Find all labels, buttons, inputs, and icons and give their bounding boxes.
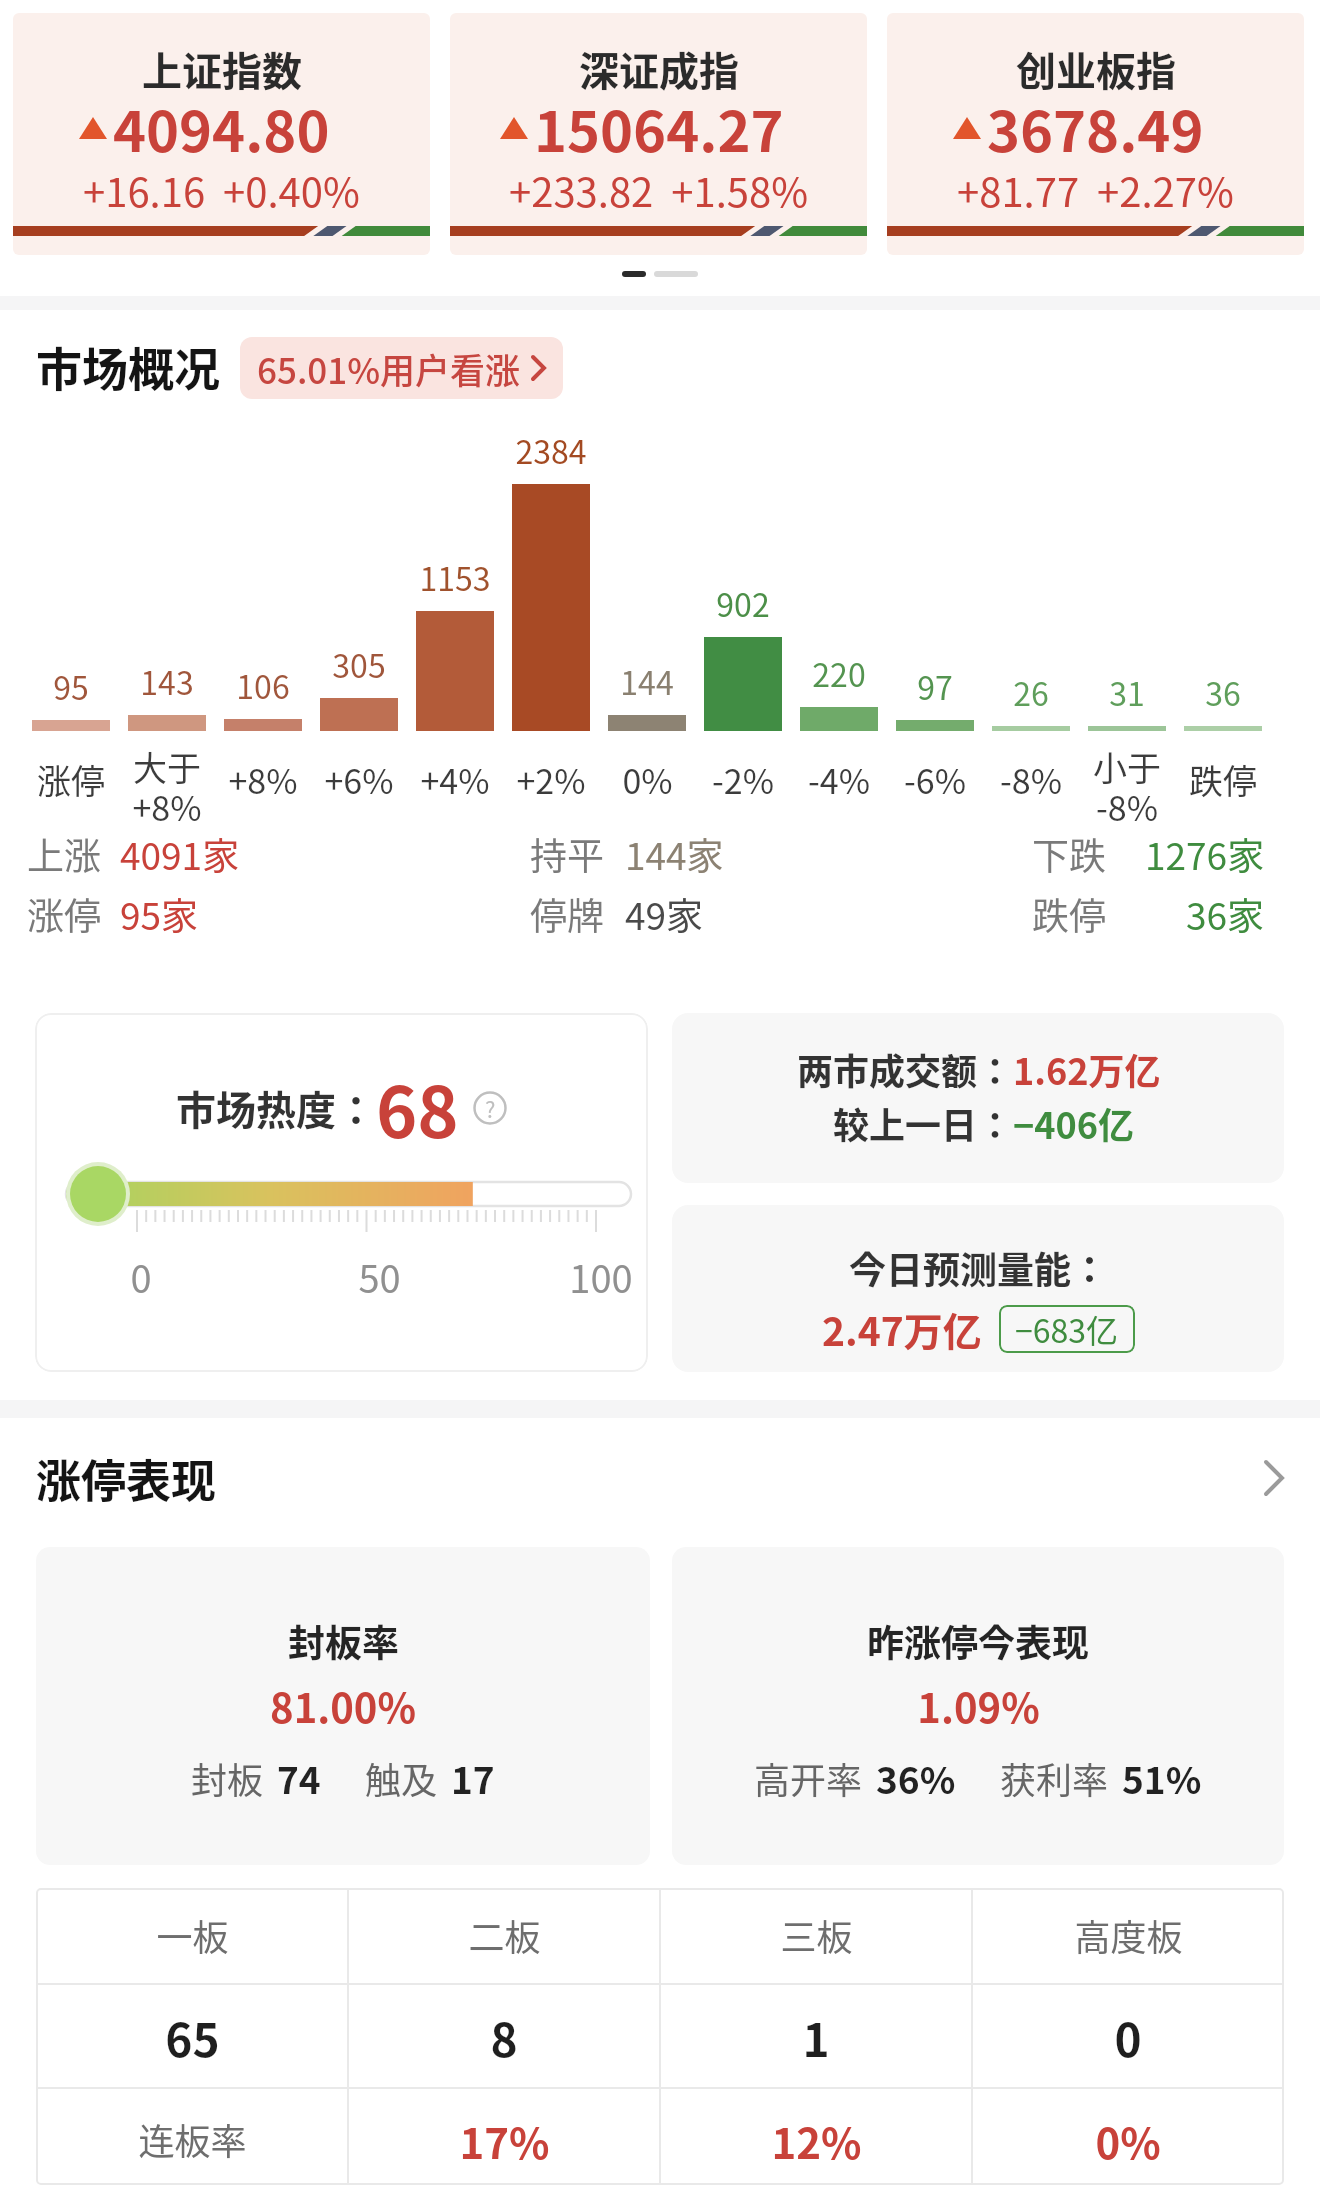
staticText: 深证成指 xyxy=(579,40,739,98)
staticText: 市场热度： xyxy=(176,1079,376,1137)
staticText: -2% xyxy=(712,755,774,804)
staticText: 49家 xyxy=(625,887,704,941)
staticText: 51% xyxy=(1122,1751,1202,1805)
staticText: 144 xyxy=(620,658,674,704)
staticText: 50 xyxy=(358,1249,401,1304)
staticText: 0 xyxy=(1114,2004,1142,2071)
staticText: +8% xyxy=(228,755,298,804)
button[interactable]: 昨涨停今表现 xyxy=(672,1547,1284,1865)
staticText: 封板 xyxy=(191,1752,264,1804)
staticText: 两市成交额： xyxy=(797,1043,1014,1095)
staticText: 封板率 xyxy=(288,1614,399,1668)
staticText: 跌停 xyxy=(1032,887,1106,941)
staticText: 1153 xyxy=(419,554,491,600)
staticText: 26 xyxy=(1013,669,1049,715)
staticText: 17 xyxy=(451,1751,495,1805)
staticText: 0 xyxy=(130,1249,152,1304)
staticText: 小于 -8% xyxy=(1093,742,1161,831)
staticText: 95家 xyxy=(120,887,199,941)
staticText: 106 xyxy=(236,662,290,708)
staticText: 81.00% xyxy=(270,1677,416,1735)
staticText: 15064.27 xyxy=(534,87,784,168)
staticText: +233.82 +1.58% xyxy=(509,161,808,219)
button[interactable]: 今日预测量能： xyxy=(672,1205,1284,1372)
staticText: −406亿 xyxy=(1013,1097,1134,1149)
staticText: 3678.49 xyxy=(987,87,1204,168)
staticText: 跌停 xyxy=(1189,755,1257,804)
staticText: ? xyxy=(485,1092,496,1124)
staticText: -4% xyxy=(808,755,870,804)
staticText: 高开率 xyxy=(754,1752,863,1804)
staticText: -6% xyxy=(904,755,966,804)
staticText: 1 xyxy=(802,2004,830,2071)
staticText: −683亿 xyxy=(1015,1306,1119,1352)
staticText: +81.77 +2.27% xyxy=(957,161,1234,219)
staticText: 停牌 xyxy=(530,887,604,941)
staticText: 涨停 xyxy=(37,755,105,804)
staticText: 一板 xyxy=(156,1909,229,1961)
staticText: 1.62万亿 xyxy=(1013,1043,1161,1095)
staticText: 4091家 xyxy=(120,827,240,881)
staticText: 三板 xyxy=(780,1909,853,1961)
staticText: +6% xyxy=(324,755,394,804)
button[interactable] xyxy=(36,1888,1284,2185)
button[interactable]: 深证成指 xyxy=(450,13,867,255)
staticText: 31 xyxy=(1109,669,1145,715)
staticText: 8 xyxy=(490,2004,518,2071)
staticText: 65.01%用户看涨 xyxy=(257,343,521,394)
staticText: 0% xyxy=(622,755,673,804)
staticText: 97 xyxy=(917,663,953,709)
staticText: 上证指数 xyxy=(142,40,302,98)
staticText: 12% xyxy=(771,2110,862,2171)
staticText: +2% xyxy=(516,755,586,804)
staticText: 36 xyxy=(1205,669,1241,715)
staticText: 17% xyxy=(459,2110,550,2171)
staticText: 二板 xyxy=(468,1909,541,1961)
button[interactable]: 市场热度： xyxy=(35,1013,648,1372)
button[interactable]: 两市成交额： xyxy=(672,1013,1284,1183)
staticText: 100 xyxy=(569,1249,633,1304)
staticText: 获利率 xyxy=(1000,1752,1109,1804)
staticText: 创业板指 xyxy=(1016,40,1176,98)
staticText: -8% xyxy=(1000,755,1062,804)
staticText: 连板率 xyxy=(138,2113,247,2165)
staticText: 220 xyxy=(812,650,866,696)
staticText: 触及 xyxy=(365,1752,438,1804)
button[interactable]: 创业板指 xyxy=(887,13,1304,255)
staticText: 902 xyxy=(716,580,770,626)
staticText: +4% xyxy=(420,755,490,804)
staticText: 市场概况 xyxy=(36,333,220,400)
staticText: 持平 xyxy=(530,827,604,881)
staticText: 36% xyxy=(876,1751,956,1805)
staticText: 下跌 xyxy=(1032,827,1106,881)
staticText: 今日预测量能： xyxy=(849,1241,1108,1295)
staticText: 上涨 xyxy=(27,827,101,881)
staticText: 143 xyxy=(140,658,194,704)
staticText: 95 xyxy=(53,663,89,709)
staticText: 涨停 xyxy=(27,887,101,941)
staticText: 144家 xyxy=(625,827,724,881)
staticText: 0% xyxy=(1095,2110,1161,2171)
staticText: 305 xyxy=(332,641,386,687)
staticText: 1276家 xyxy=(1145,827,1265,881)
staticText: 68 xyxy=(376,1057,459,1158)
staticText: 高度板 xyxy=(1074,1909,1183,1961)
button[interactable]: 封板率 xyxy=(36,1547,650,1865)
staticText: 74 xyxy=(277,1751,321,1805)
staticText: 较上一日： xyxy=(833,1097,1014,1149)
staticText: 36家 xyxy=(1186,887,1265,941)
button[interactable]: 65.01%用户看涨 xyxy=(240,337,563,399)
staticText: 大于 +8% xyxy=(132,742,202,831)
staticText: 4094.80 xyxy=(113,87,330,168)
staticText: 2384 xyxy=(515,427,587,473)
staticText: 涨停表现 xyxy=(36,1446,217,1511)
staticText: 1.09% xyxy=(917,1677,1040,1735)
staticText: 65 xyxy=(165,2004,220,2071)
staticText: 昨涨停今表现 xyxy=(867,1614,1089,1668)
button[interactable]: 上证指数 xyxy=(13,13,430,255)
staticText: +16.16 +0.40% xyxy=(83,161,360,219)
button[interactable]: 涨停表现 xyxy=(0,1438,1320,1518)
staticText: 2.47万亿 xyxy=(822,1301,982,1357)
